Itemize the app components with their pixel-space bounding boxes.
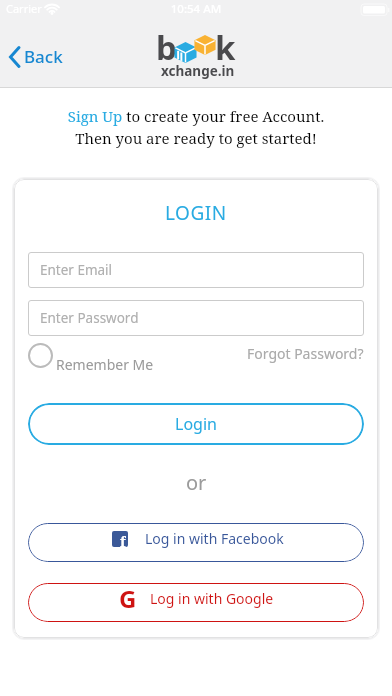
staticText: Enter Email — [40, 261, 113, 279]
staticText: k — [215, 25, 236, 70]
button[interactable]: Back — [8, 45, 63, 68]
staticText: or — [186, 469, 207, 496]
staticText: Enter Password — [40, 309, 139, 327]
staticText: Log in with Google — [150, 589, 274, 608]
staticText: LOGIN — [165, 200, 227, 226]
button[interactable]: Enter Password — [28, 300, 364, 336]
staticText: f — [120, 532, 126, 547]
staticText: 10:54 AM — [0, 1, 392, 17]
button[interactable]: Enter Email — [28, 252, 364, 288]
button[interactable]: Sign Up to create your free Account. The… — [0, 106, 392, 149]
staticText: Remember Me — [56, 355, 154, 374]
staticText: G — [119, 583, 137, 615]
staticText: Login — [175, 413, 217, 435]
button[interactable]: f — [28, 523, 364, 562]
button[interactable]: Remember Me — [28, 343, 140, 383]
staticText: Back — [24, 45, 63, 68]
staticText: Log in with Facebook — [145, 529, 284, 548]
staticText: b — [156, 25, 177, 70]
button[interactable]: Login — [28, 403, 364, 445]
button[interactable]: G — [28, 583, 364, 622]
staticText: xchange.in — [161, 62, 235, 80]
button[interactable]: Forgot Password? — [247, 344, 364, 363]
staticText: Carrier — [6, 1, 42, 16]
